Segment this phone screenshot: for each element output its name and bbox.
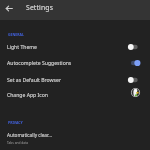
button[interactable]: Autocomplete Suggestions <box>0 55 150 71</box>
staticText: PRIVACY <box>8 120 23 125</box>
button[interactable]: Toggle off <box>126 39 142 55</box>
staticText: Settings <box>26 3 54 12</box>
staticText: Autocomplete Suggestions <box>7 60 72 67</box>
button[interactable]: Change App Icon <box>0 87 150 103</box>
staticText: GENERAL <box>8 32 24 37</box>
button[interactable]: Set as Default Browser <box>0 72 150 88</box>
button[interactable]: Light Theme <box>0 39 150 55</box>
button[interactable]: Automatically clear... <box>0 127 150 149</box>
staticText: Tabs and data <box>7 141 29 145</box>
button[interactable]: Change app icon <box>126 87 142 103</box>
button[interactable]: Back <box>0 0 18 18</box>
staticText: Automatically clear... <box>7 132 52 138</box>
staticText: Set as Default Browser <box>7 77 61 84</box>
staticText: Light Theme <box>7 44 37 51</box>
button[interactable]: Toggle on <box>126 55 142 71</box>
button[interactable]: Toggle off <box>126 72 142 88</box>
staticText: Change App Icon <box>7 92 48 99</box>
